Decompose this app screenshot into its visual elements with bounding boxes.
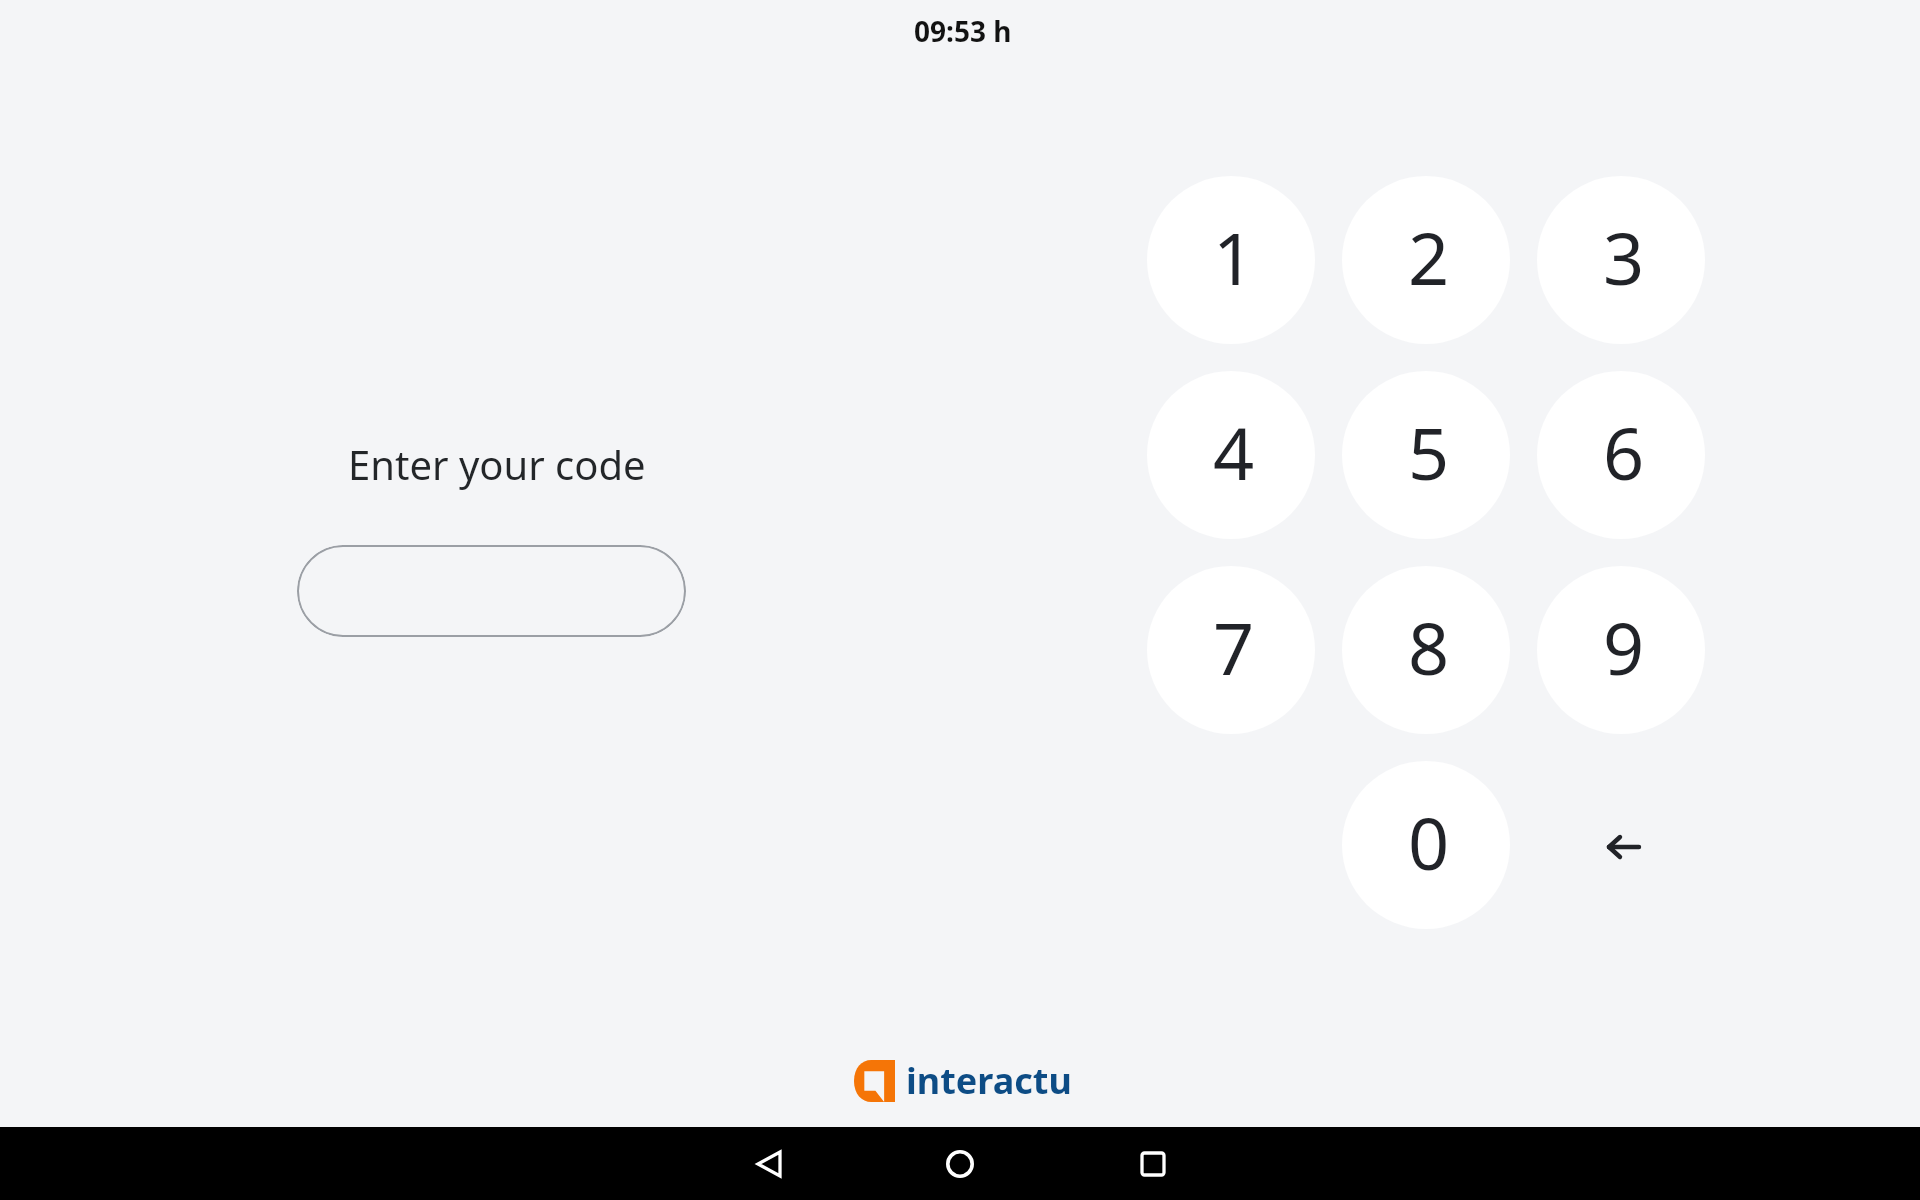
button[interactable]: 7 — [1147, 566, 1315, 734]
button[interactable]: 8 — [1342, 566, 1510, 734]
button[interactable]: 4 — [1147, 371, 1315, 539]
button[interactable]: Home — [925, 1129, 995, 1199]
staticText: 3 — [1603, 208, 1645, 306]
staticText: 4 — [1213, 403, 1255, 501]
button[interactable]: 6 — [1537, 371, 1705, 539]
staticText: 0 — [1408, 793, 1450, 891]
button[interactable]: 1 — [1147, 176, 1315, 344]
button[interactable]: 0 — [1342, 761, 1510, 929]
staticText: 2 — [1408, 208, 1450, 306]
button[interactable]: Back — [734, 1129, 804, 1199]
button[interactable]: Backspace — [1537, 761, 1705, 929]
staticText: 5 — [1408, 403, 1450, 501]
staticText: 6 — [1603, 403, 1645, 501]
staticText: 09:53 h — [914, 12, 1012, 50]
button[interactable]: Recent apps — [1116, 1129, 1186, 1199]
button[interactable]: 9 — [1537, 566, 1705, 734]
button[interactable]: 5 — [1342, 371, 1510, 539]
staticText: 8 — [1408, 598, 1450, 696]
button[interactable]: 3 — [1537, 176, 1705, 344]
staticText: 7 — [1213, 598, 1255, 696]
staticText: Enter your code — [348, 437, 646, 491]
staticText: 1 — [1213, 208, 1255, 306]
staticText: interactu — [906, 1056, 1072, 1105]
button[interactable]: 2 — [1342, 176, 1510, 344]
staticText: 9 — [1603, 598, 1645, 696]
button[interactable] — [297, 545, 686, 637]
